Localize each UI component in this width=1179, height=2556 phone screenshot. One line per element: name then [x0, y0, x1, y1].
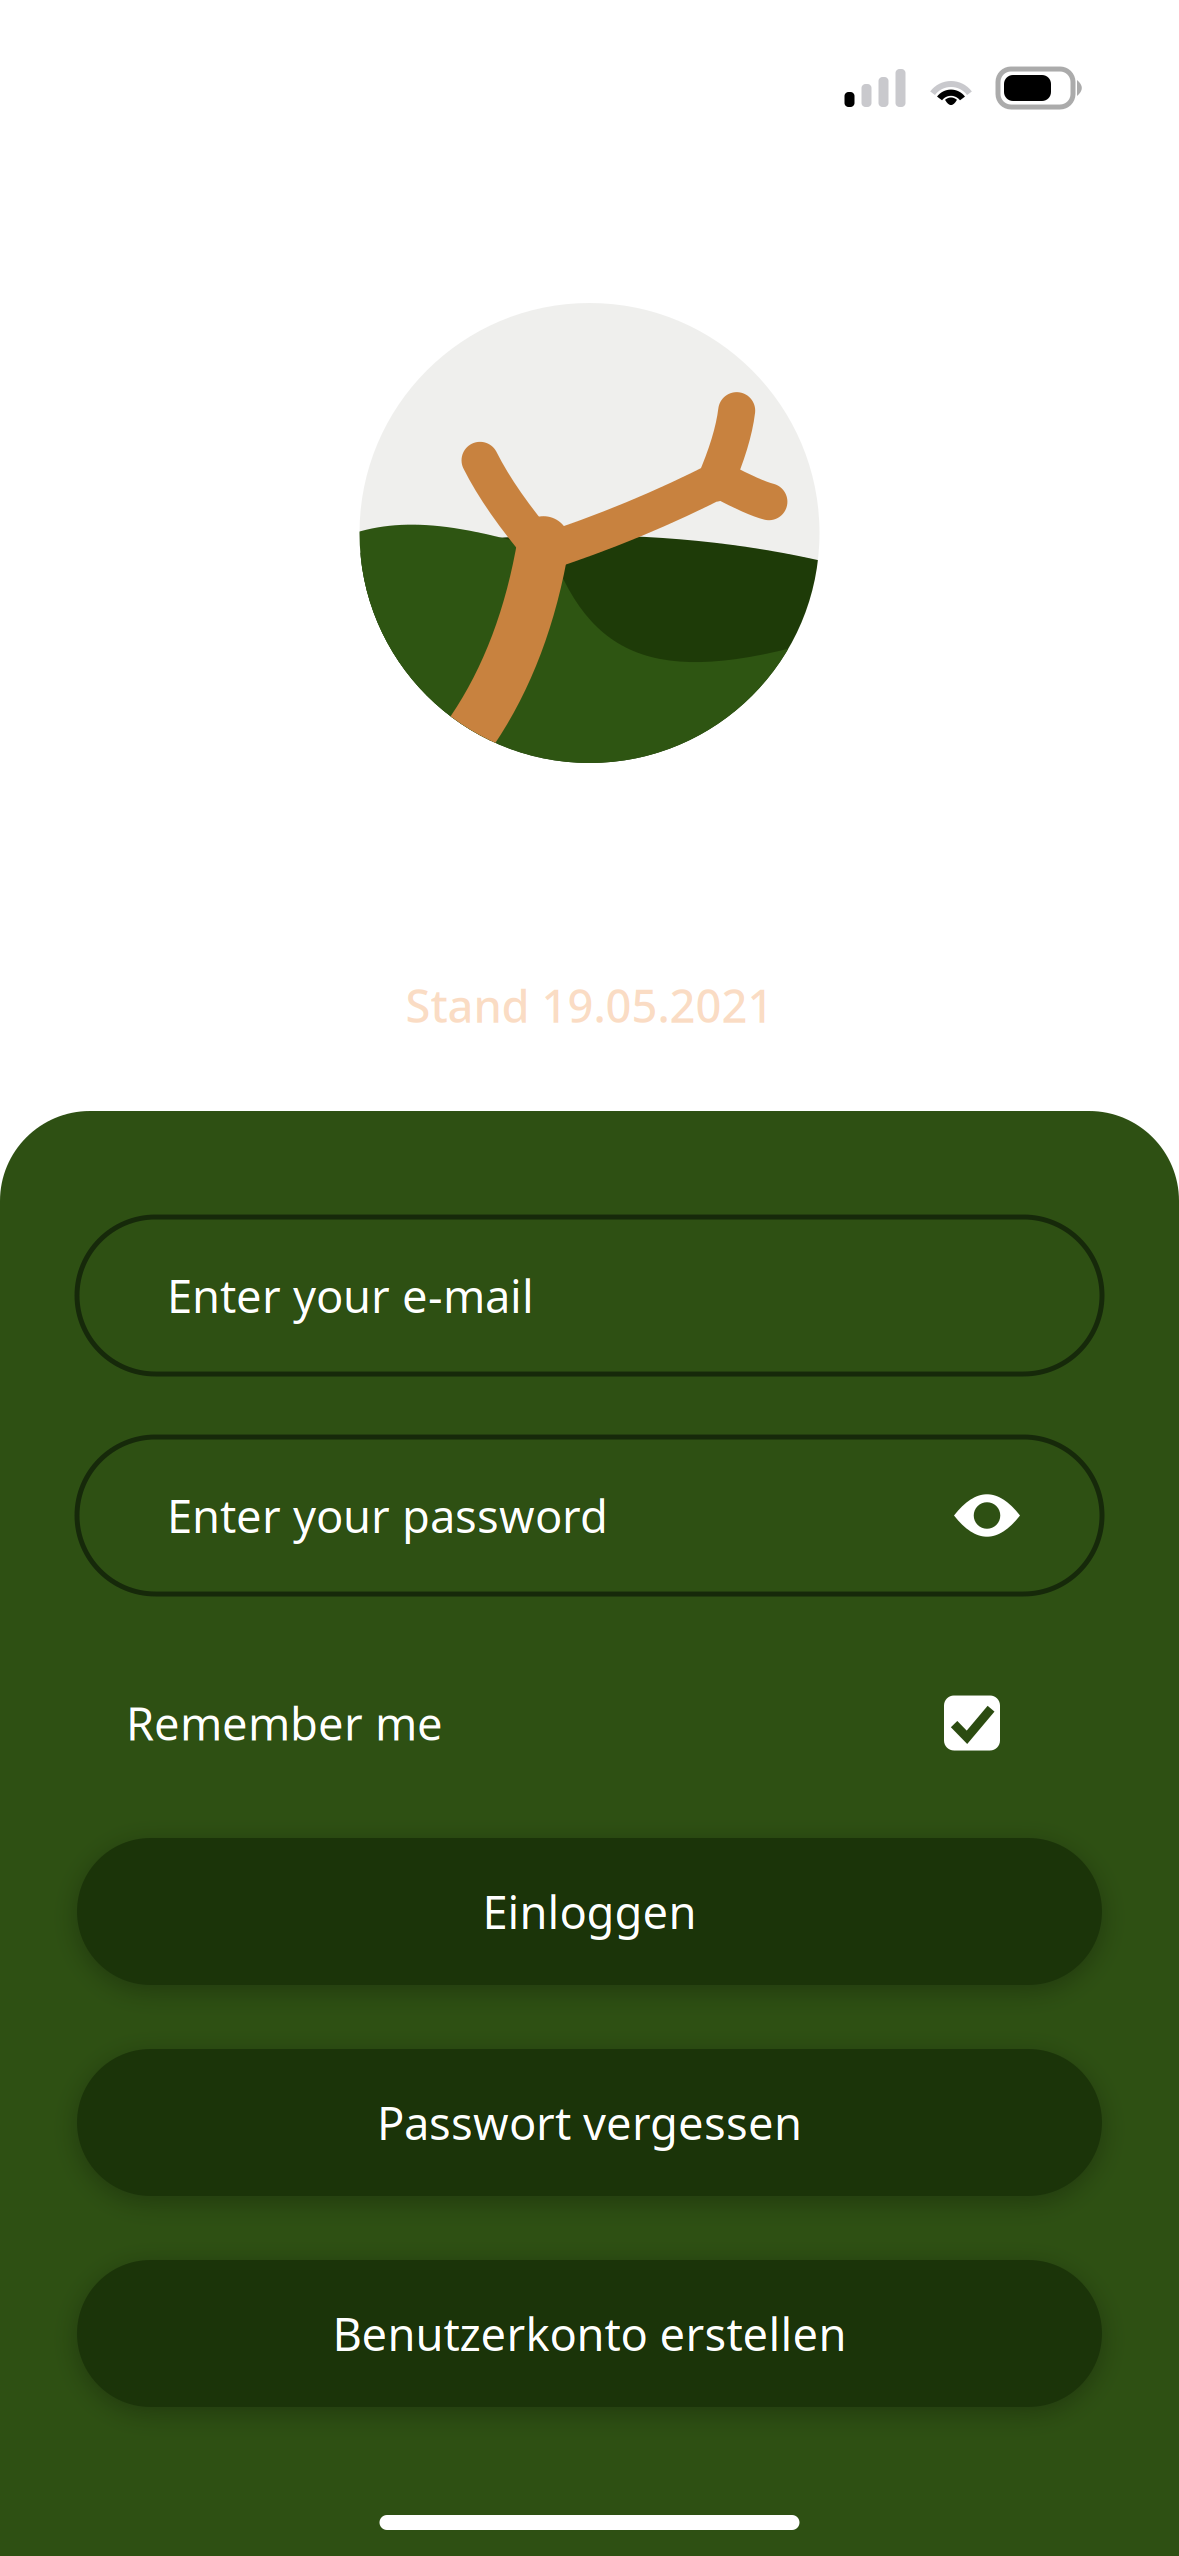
staticText: Passwort vergessen: [377, 2092, 802, 2153]
button[interactable]: Remember me: [77, 1679, 1102, 1767]
button[interactable]: Passwort vergessen: [77, 2049, 1102, 2196]
staticText: Benutzerkonto erstellen: [332, 2303, 846, 2364]
button[interactable]: Einloggen: [77, 1838, 1102, 1985]
button[interactable]: Benutzerkonto erstellen: [77, 2260, 1102, 2407]
staticText: Enter your password: [167, 1485, 608, 1546]
staticText: Enter your e-mail: [167, 1265, 534, 1326]
staticText: Stand 19.05.2021: [405, 975, 773, 1035]
staticText: Remember me: [126, 1693, 443, 1753]
button[interactable]: Enter your e-mail: [77, 1217, 1102, 1374]
button[interactable]: Enter your password: [77, 1437, 1102, 1594]
staticText: Einloggen: [482, 1881, 696, 1942]
